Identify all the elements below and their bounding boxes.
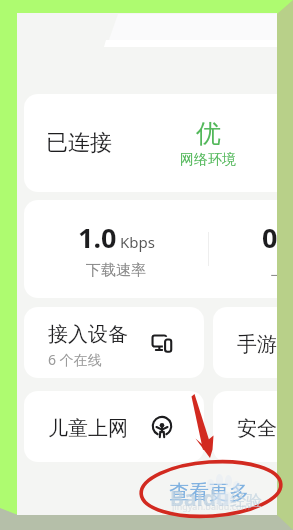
staticText: 上传速率 <box>271 261 277 280</box>
button[interactable]: 查看更多 <box>169 480 249 505</box>
other: Child internet <box>151 416 173 438</box>
staticText: 网络环境 <box>180 151 236 169</box>
button[interactable]: 儿童上网 <box>24 391 204 462</box>
staticText: 儿童上网 <box>48 416 128 441</box>
staticText: 0.2 <box>262 219 277 256</box>
staticText: 接入设备 <box>48 322 128 347</box>
other: Connected devices <box>151 332 173 354</box>
staticText: Kbps <box>120 232 155 252</box>
staticText: 经验 <box>230 491 262 511</box>
button[interactable]: 已连接 <box>24 94 277 192</box>
staticText: 查看更多 <box>169 480 249 505</box>
staticText: 优 <box>196 118 221 149</box>
staticText: 1.0 <box>78 219 117 256</box>
button[interactable]: 接入设备 <box>24 307 204 378</box>
staticText: 已连接 <box>46 129 112 157</box>
button[interactable]: 手游加速 <box>213 307 277 378</box>
staticText: 手游加速 <box>237 332 277 357</box>
button[interactable]: 1.0 <box>24 200 277 298</box>
staticText: Baidu <box>170 484 230 513</box>
staticText: 6 个在线 <box>48 350 102 369</box>
button[interactable]: 安全防护 <box>213 391 277 462</box>
staticText: jingyan.baidu.com <box>172 500 250 512</box>
staticText: 下载速率 <box>86 261 146 280</box>
staticText: 安全防护 <box>237 416 277 441</box>
